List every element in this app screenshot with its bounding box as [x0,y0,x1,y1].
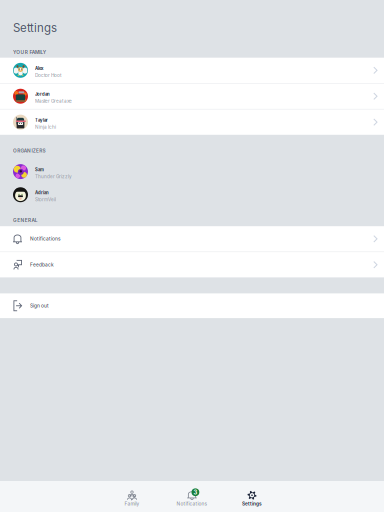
staticText: Family [124,501,139,507]
button[interactable]: Sam [0,160,384,183]
staticText: Feedback [30,262,54,268]
staticText: Jordan [35,92,50,97]
staticText: Alex [35,66,43,71]
staticText: Ninja Ichi [35,124,56,130]
staticText: ORGANIZERS [13,148,45,154]
staticText: Thunder Grizzly [35,174,72,179]
button[interactable]: 3 [162,491,222,507]
staticText: YOUR FAMILY [13,49,46,55]
staticText: Doctor Hoot [35,72,62,78]
staticText: Sam [35,167,44,172]
staticText: Settings [242,501,262,507]
staticText: Notifications [176,501,207,507]
button[interactable]: Taylar [0,109,384,135]
staticText: 3 [193,489,197,496]
button[interactable]: Feedback [0,252,384,277]
staticText: Master Greataxe [35,98,72,104]
button[interactable]: Notifications [0,226,384,251]
staticText: Sign out [30,303,49,309]
button[interactable]: Jordan [0,84,384,109]
staticText: Adrian [35,190,49,195]
staticText: Taylar [35,118,48,123]
button[interactable]: Sign out [0,293,384,318]
button[interactable]: Alex [0,58,384,83]
staticText: Settings [13,21,57,35]
staticText: StormVeil [35,197,56,202]
button[interactable]: Settings [222,491,282,507]
button[interactable]: Adrian [0,183,384,206]
staticText: GENERAL [13,217,38,223]
button[interactable]: Family [102,491,162,507]
staticText: Notifications [30,236,61,242]
